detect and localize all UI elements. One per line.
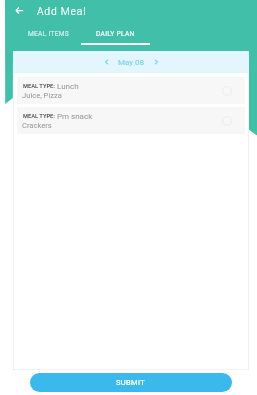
button[interactable]: Back	[12, 3, 27, 18]
button[interactable]: MEAL ITEMS	[14, 30, 83, 46]
button[interactable]: MEAL TYPE:	[17, 77, 245, 104]
staticText: May 08	[118, 58, 145, 67]
button[interactable]: MEAL TYPE:	[17, 107, 245, 134]
staticText: Add Meal	[37, 5, 87, 17]
staticText: MEAL ITEMS	[28, 30, 70, 38]
button[interactable]: SUBMIT	[30, 373, 232, 392]
button[interactable]: DAILY PLAN	[81, 30, 150, 46]
staticText: MEAL TYPE:	[23, 113, 55, 120]
staticText: Crackers	[22, 121, 52, 130]
staticText: DAILY PLAN	[96, 30, 135, 38]
button[interactable]: Previous day	[100, 55, 114, 69]
staticText: SUBMIT	[116, 378, 146, 387]
staticText: Juice, Pizza	[22, 91, 62, 100]
staticText: Pm snack	[57, 112, 93, 121]
staticText: MEAL TYPE:	[23, 83, 55, 90]
button[interactable]: Next day	[149, 55, 163, 69]
staticText: Lunch	[57, 82, 79, 91]
